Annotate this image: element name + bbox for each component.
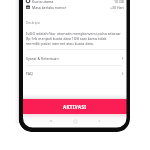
button[interactable]: Syarat & Ketentuan xyxy=(26,51,124,65)
staticText: Syarat & Ketentuan xyxy=(26,56,59,61)
staticText: AKTIVASI xyxy=(63,104,87,110)
button[interactable]: AKTIVASI xyxy=(23,99,127,114)
button[interactable]: Back xyxy=(95,117,103,125)
staticText: +30 Hari xyxy=(110,5,124,10)
button[interactable]: FAQ xyxy=(26,66,124,80)
staticText: Kuota utama xyxy=(32,0,54,4)
staticText: IsiGO adalah fitur otomatis mengkonversi… xyxy=(26,31,126,46)
staticText: FAQ xyxy=(26,71,33,76)
button[interactable]: Home xyxy=(71,117,79,125)
button[interactable]: Recents xyxy=(47,117,55,125)
button[interactable]: Masa berlaku nomor xyxy=(26,4,124,10)
staticText: Masa berlaku nomor xyxy=(32,5,67,10)
button[interactable]: Kuota utama xyxy=(26,0,124,4)
staticText: Deskripsi xyxy=(26,21,40,25)
staticText: 10 GB xyxy=(114,0,124,4)
